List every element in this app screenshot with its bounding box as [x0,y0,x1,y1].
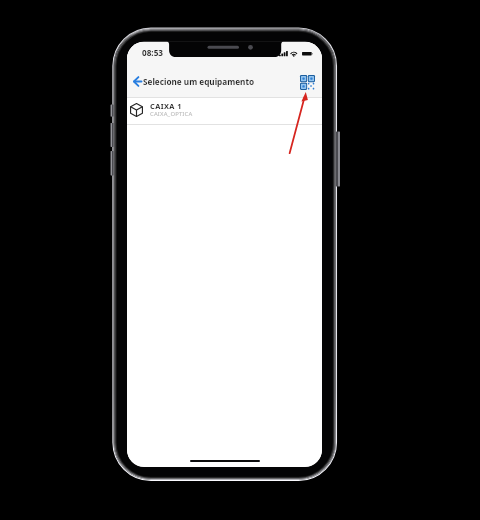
staticText: CAIXA_OPTICA [150,110,193,118]
button[interactable]: CAIXA 1 [127,98,322,124]
other: Back [133,76,142,87]
staticText: CAIXA 1 [150,101,182,111]
button[interactable]: Back [127,71,259,92]
button[interactable]: Scan QR code [298,73,317,91]
staticText: Selecione um equipamento [143,76,255,87]
staticText: 08:53 [142,47,164,58]
